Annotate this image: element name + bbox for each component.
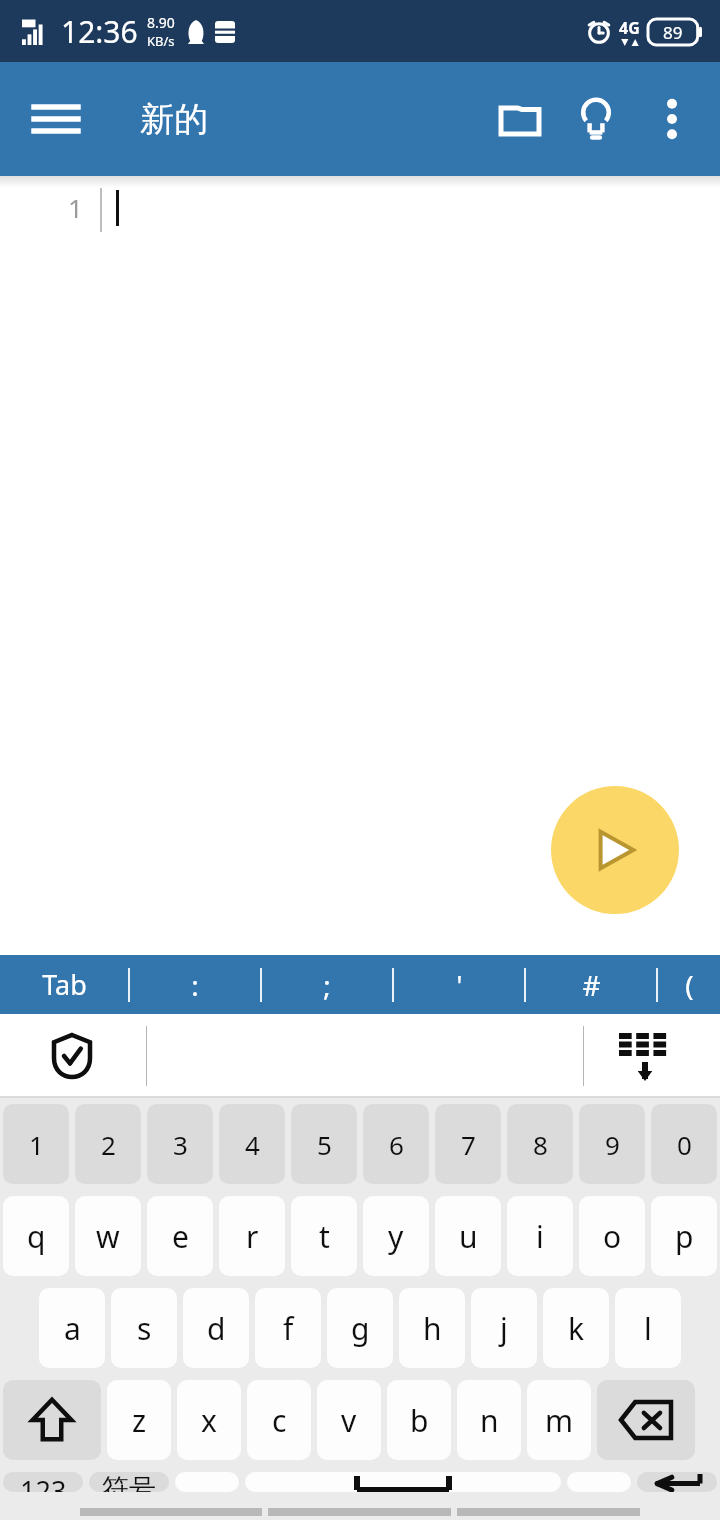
button[interactable]: j — [471, 1288, 537, 1368]
button[interactable]: g — [327, 1288, 393, 1368]
button[interactable] — [597, 1380, 695, 1460]
staticText: f — [283, 1308, 294, 1349]
staticText: 9 — [605, 1127, 620, 1162]
button[interactable]: p — [651, 1196, 717, 1276]
button[interactable]: 7 — [435, 1104, 501, 1184]
button[interactable]: , — [175, 1472, 239, 1492]
button[interactable]: r — [219, 1196, 285, 1276]
staticText: w — [96, 1216, 120, 1257]
button[interactable]: x — [177, 1380, 241, 1460]
staticText: 6 — [389, 1127, 404, 1162]
button[interactable]: 5 — [291, 1104, 357, 1184]
button[interactable]: Tab — [0, 955, 128, 1014]
staticText: g — [351, 1308, 370, 1349]
staticText: u — [459, 1216, 478, 1257]
staticText: 4G — [619, 17, 640, 39]
staticText: s — [137, 1308, 152, 1349]
staticText: 1 — [68, 190, 83, 225]
button[interactable]: y — [363, 1196, 429, 1276]
button[interactable]: b — [387, 1380, 451, 1460]
button[interactable]: m — [527, 1380, 591, 1460]
staticText: 8 — [533, 1127, 548, 1162]
button[interactable]: . — [567, 1472, 631, 1492]
staticText: a — [64, 1308, 81, 1349]
staticText: d — [207, 1308, 226, 1349]
staticText: p — [675, 1216, 694, 1257]
button[interactable]: s — [111, 1288, 177, 1368]
button[interactable]: u — [435, 1196, 501, 1276]
staticText: m — [545, 1400, 574, 1441]
staticText: 2 — [101, 1127, 116, 1162]
staticText: l — [644, 1308, 652, 1349]
button[interactable]: ( — [658, 955, 720, 1014]
staticText: o — [603, 1216, 622, 1257]
button[interactable]: ' — [394, 955, 524, 1014]
staticText: 符号 — [102, 1472, 156, 1492]
button[interactable]: More options — [634, 81, 710, 157]
staticText: v — [341, 1400, 357, 1441]
staticText: 12:36 — [61, 11, 138, 52]
button[interactable]: 3 — [147, 1104, 213, 1184]
staticText: KB/s — [147, 32, 175, 50]
staticText: # — [582, 966, 601, 1004]
button[interactable]: Run — [551, 786, 679, 914]
button[interactable]: Open folder — [482, 81, 558, 157]
staticText: 5 — [317, 1127, 332, 1162]
button[interactable]: w — [75, 1196, 141, 1276]
button[interactable]: n — [457, 1380, 521, 1460]
button[interactable]: # — [526, 955, 656, 1014]
button[interactable]: 123 — [3, 1472, 83, 1492]
button[interactable]: q — [3, 1196, 69, 1276]
button[interactable]: : — [130, 955, 260, 1014]
staticText: y — [388, 1216, 404, 1257]
button[interactable]: k — [543, 1288, 609, 1368]
staticText: e — [172, 1216, 189, 1257]
staticText: 1 — [29, 1127, 44, 1162]
staticText: k — [568, 1308, 585, 1349]
staticText: 3 — [173, 1127, 188, 1162]
button[interactable] — [637, 1472, 717, 1492]
button[interactable]: Hints — [558, 81, 634, 157]
button[interactable]: v — [317, 1380, 381, 1460]
button[interactable]: 1 — [3, 1104, 69, 1184]
button[interactable]: Menu — [20, 83, 92, 155]
button[interactable]: 6 — [363, 1104, 429, 1184]
staticText: n — [480, 1400, 499, 1441]
staticText: 89 — [663, 21, 683, 44]
button[interactable]: 0 — [651, 1104, 717, 1184]
button[interactable]: f — [255, 1288, 321, 1368]
staticText: z — [132, 1400, 147, 1441]
staticText: i — [536, 1216, 544, 1257]
staticText: b — [410, 1400, 429, 1441]
button[interactable]: d — [183, 1288, 249, 1368]
staticText: 123 — [20, 1472, 67, 1492]
button[interactable]: Secure input — [40, 1024, 104, 1088]
button[interactable] — [3, 1380, 101, 1460]
staticText: Tab — [42, 966, 87, 1003]
staticText: 新的 — [140, 98, 208, 141]
button[interactable]: 2 — [75, 1104, 141, 1184]
button[interactable]: i — [507, 1196, 573, 1276]
button[interactable]: t — [291, 1196, 357, 1276]
button[interactable]: 4 — [219, 1104, 285, 1184]
staticText: r — [246, 1216, 259, 1257]
button[interactable]: a — [39, 1288, 105, 1368]
button[interactable]: h — [399, 1288, 465, 1368]
staticText: j — [500, 1308, 508, 1349]
button[interactable]: 8 — [507, 1104, 573, 1184]
button[interactable]: z — [107, 1380, 171, 1460]
button[interactable]: ; — [262, 955, 392, 1014]
button[interactable]: l — [615, 1288, 681, 1368]
button[interactable]: o — [579, 1196, 645, 1276]
staticText: ( — [685, 966, 694, 1004]
button[interactable]: Hide keyboard — [610, 1021, 680, 1091]
button[interactable] — [245, 1472, 561, 1492]
staticText: 0 — [677, 1127, 692, 1162]
button[interactable]: c — [247, 1380, 311, 1460]
button[interactable]: e — [147, 1196, 213, 1276]
staticText: t — [319, 1216, 330, 1257]
button[interactable]: 符号 — [89, 1472, 169, 1492]
button[interactable]: 9 — [579, 1104, 645, 1184]
